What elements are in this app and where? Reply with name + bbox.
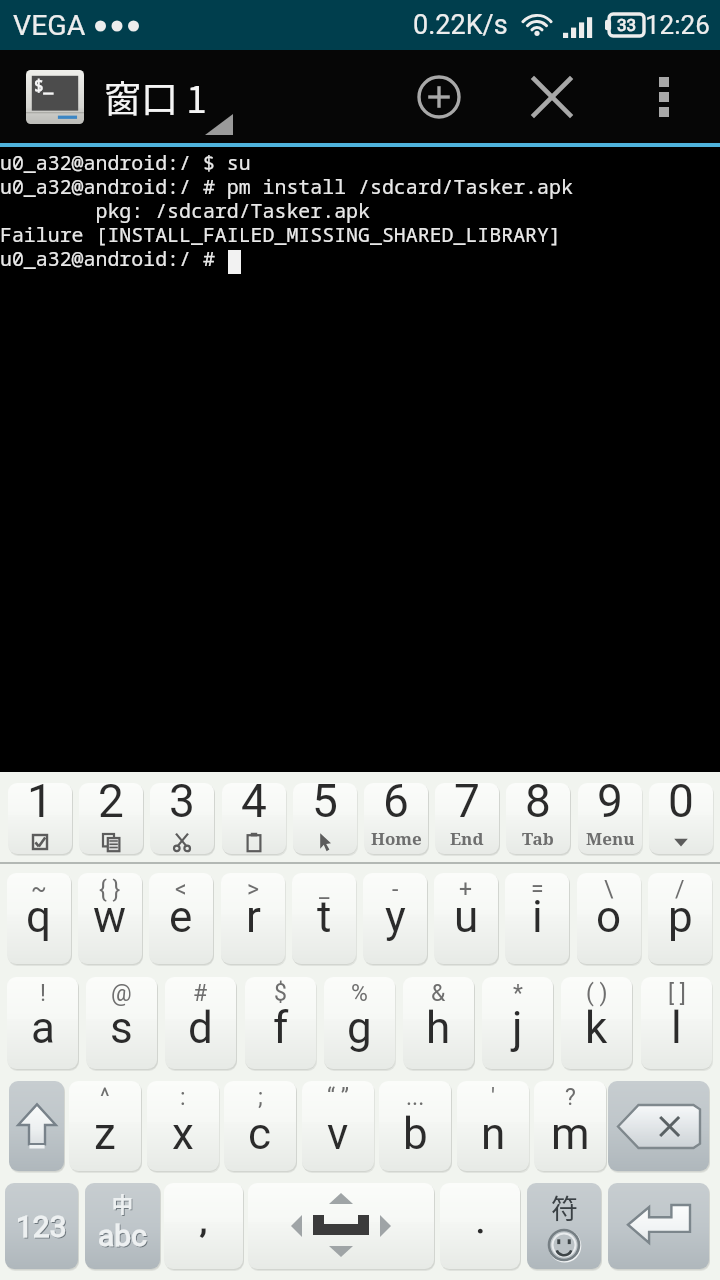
staticText: \ xyxy=(604,876,614,903)
button[interactable]: > xyxy=(221,873,285,964)
staticText: 123 xyxy=(17,1210,68,1245)
button[interactable]: Close window xyxy=(510,55,594,139)
button[interactable]: “ ” xyxy=(302,1081,374,1171)
staticText: l xyxy=(671,1002,682,1054)
staticText: v xyxy=(327,1108,349,1160)
button[interactable]: Symbols xyxy=(527,1183,601,1269)
button[interactable]: < xyxy=(149,873,213,964)
staticText: End xyxy=(450,827,484,850)
staticText: 2 xyxy=(98,783,124,828)
staticText: Home xyxy=(371,827,422,850)
staticText: n xyxy=(481,1108,506,1160)
button[interactable]: . xyxy=(440,1183,520,1269)
staticText: g xyxy=(347,1002,372,1054)
staticText: r xyxy=(246,891,261,943)
staticText: # xyxy=(193,980,208,1007)
staticText: o xyxy=(596,891,622,943)
staticText: / xyxy=(675,876,685,903)
button[interactable]: & xyxy=(403,977,474,1069)
button[interactable]: \ xyxy=(577,873,641,964)
button[interactable]: ... xyxy=(379,1081,451,1171)
staticText: 7 xyxy=(454,783,480,828)
staticText: 0.22K/s xyxy=(413,9,508,41)
staticText: a xyxy=(31,1002,55,1054)
staticText: @ xyxy=(111,980,132,1007)
button[interactable]: ! xyxy=(7,977,78,1069)
staticText: “ ” xyxy=(327,1084,350,1111)
button[interactable]: 9 xyxy=(578,783,642,854)
button[interactable]: Backspace xyxy=(608,1081,709,1171)
button[interactable]: 8 xyxy=(506,783,570,854)
button[interactable]: 1 xyxy=(8,783,72,854)
staticText: 6 xyxy=(383,783,409,828)
staticText: z xyxy=(94,1108,116,1160)
button[interactable]: [ ] xyxy=(641,977,712,1069)
button[interactable]: More options xyxy=(624,50,704,143)
staticText: w xyxy=(93,891,127,943)
button[interactable]: ; xyxy=(224,1081,296,1171)
button[interactable]: : xyxy=(147,1081,219,1171)
button[interactable]: % xyxy=(324,977,395,1069)
button[interactable]: 3 xyxy=(150,783,214,854)
staticText: 窗口 1 xyxy=(104,70,207,124)
staticText: 5 xyxy=(312,783,338,828)
button[interactable]: 5 xyxy=(293,783,357,854)
staticText: 33 xyxy=(617,15,637,35)
staticText: e xyxy=(169,891,193,943)
button[interactable]: $_ xyxy=(0,50,213,143)
button[interactable]: 2 xyxy=(79,783,143,854)
button[interactable]: + xyxy=(434,873,498,964)
staticText: p xyxy=(668,891,693,943)
staticText: c xyxy=(248,1108,272,1160)
staticText: < xyxy=(175,876,187,903)
staticText: 4 xyxy=(241,783,267,828)
staticText: ' xyxy=(491,1084,496,1111)
staticText: ! xyxy=(40,980,46,1007)
staticText: i xyxy=(532,891,543,943)
button[interactable]: New window xyxy=(397,55,481,139)
button[interactable]: 6 xyxy=(364,783,428,854)
button[interactable]: / xyxy=(648,873,712,964)
button[interactable]: _ xyxy=(292,873,356,964)
staticText: Menu xyxy=(586,827,635,850)
staticText: 12:26 xyxy=(645,10,710,40)
button[interactable]: Space xyxy=(248,1183,434,1269)
staticText: : xyxy=(180,1084,186,1111)
button[interactable]: * xyxy=(482,977,553,1069)
staticText: abc xyxy=(98,1218,147,1253)
button[interactable]: @ xyxy=(86,977,157,1069)
staticText: > xyxy=(247,876,260,903)
staticText: $ xyxy=(274,980,287,1007)
button[interactable]: 4 xyxy=(222,783,286,854)
button[interactable]: Input method xyxy=(85,1183,160,1269)
button[interactable]: # xyxy=(165,977,236,1069)
button[interactable]: { } xyxy=(78,873,142,964)
button[interactable]: 7 xyxy=(435,783,499,854)
button[interactable]: Shift xyxy=(9,1081,64,1171)
button[interactable]: 0 xyxy=(649,783,713,854)
staticText: 9 xyxy=(597,783,623,828)
staticText: 8 xyxy=(525,783,551,828)
button[interactable]: ? xyxy=(534,1081,606,1171)
button[interactable]: - xyxy=(363,873,427,964)
staticText: abc xyxy=(99,1219,148,1254)
staticText: j xyxy=(512,1002,523,1054)
staticText: ? xyxy=(565,1084,576,1111)
staticText: k xyxy=(585,1002,608,1054)
button[interactable]: ^ xyxy=(69,1081,141,1171)
button[interactable]: , xyxy=(164,1183,243,1269)
button[interactable]: ~ xyxy=(7,873,71,964)
staticText: u xyxy=(454,891,479,943)
staticText: h xyxy=(426,1002,451,1054)
staticText: t xyxy=(317,891,332,943)
button[interactable]: = xyxy=(505,873,569,964)
staticText: s xyxy=(110,1002,133,1054)
button[interactable]: ' xyxy=(457,1081,529,1171)
staticText: [ ] xyxy=(668,980,686,1007)
button[interactable]: $ xyxy=(245,977,316,1069)
staticText: % xyxy=(351,980,368,1007)
staticText: + xyxy=(459,876,473,903)
button[interactable]: Enter xyxy=(608,1183,709,1269)
button[interactable]: Numbers xyxy=(5,1183,78,1269)
button[interactable]: ( ) xyxy=(561,977,632,1069)
